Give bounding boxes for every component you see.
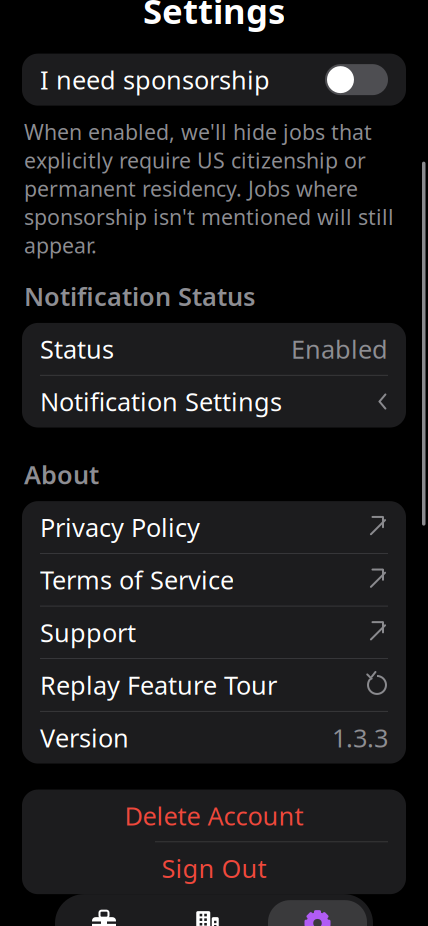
button[interactable]: Sign Out — [22, 842, 406, 894]
staticText: 1.3.3 — [332, 721, 388, 754]
button[interactable]: Terms of Service — [22, 554, 406, 606]
button[interactable]: Replay Feature Tour — [22, 659, 406, 711]
button[interactable]: Privacy Policy — [22, 501, 406, 553]
staticText: Notification Settings — [40, 385, 282, 418]
staticText: Status — [40, 332, 114, 366]
staticText: Settings — [143, 0, 285, 34]
staticText: Notification Status — [24, 279, 255, 313]
staticText: Enabled — [291, 332, 388, 366]
staticText: Version — [40, 721, 129, 754]
staticText: Sign Out — [161, 851, 266, 885]
staticText: I need sponsorship — [40, 63, 270, 96]
button[interactable]: Support — [22, 606, 406, 658]
button[interactable]: Delete Account — [22, 790, 406, 842]
button[interactable]: Companies — [147, 900, 268, 926]
button[interactable]: I need sponsorship — [325, 64, 388, 95]
staticText: About — [24, 457, 99, 491]
staticText: Support — [40, 615, 136, 649]
staticText: When enabled, we'll hide jobs that expli… — [24, 118, 394, 259]
staticText: Replay Feature Tour — [40, 668, 277, 702]
staticText: Privacy Policy — [40, 510, 200, 544]
staticText: Terms of Service — [40, 563, 234, 596]
button[interactable]: Settings — [268, 900, 367, 926]
button[interactable]: Jobs — [61, 900, 147, 926]
button[interactable]: Notification Settings — [22, 375, 406, 427]
staticText: Delete Account — [124, 799, 303, 832]
